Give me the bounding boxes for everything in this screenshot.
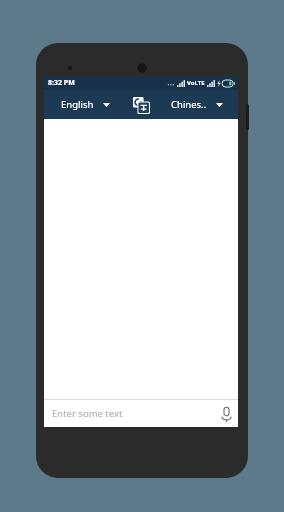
staticText: 8:32 PM (48, 78, 75, 88)
button[interactable]: Enter some text (44, 400, 238, 427)
staticText: English (61, 98, 94, 111)
button[interactable]: Swap languages (126, 90, 155, 119)
staticText: Enter some text (52, 407, 214, 420)
staticText: Chines.. (171, 98, 207, 111)
staticText: VoLTE (187, 79, 205, 87)
button[interactable]: Chines.. (155, 90, 238, 119)
button[interactable]: Voice input (214, 402, 238, 426)
button[interactable]: English (44, 90, 126, 119)
